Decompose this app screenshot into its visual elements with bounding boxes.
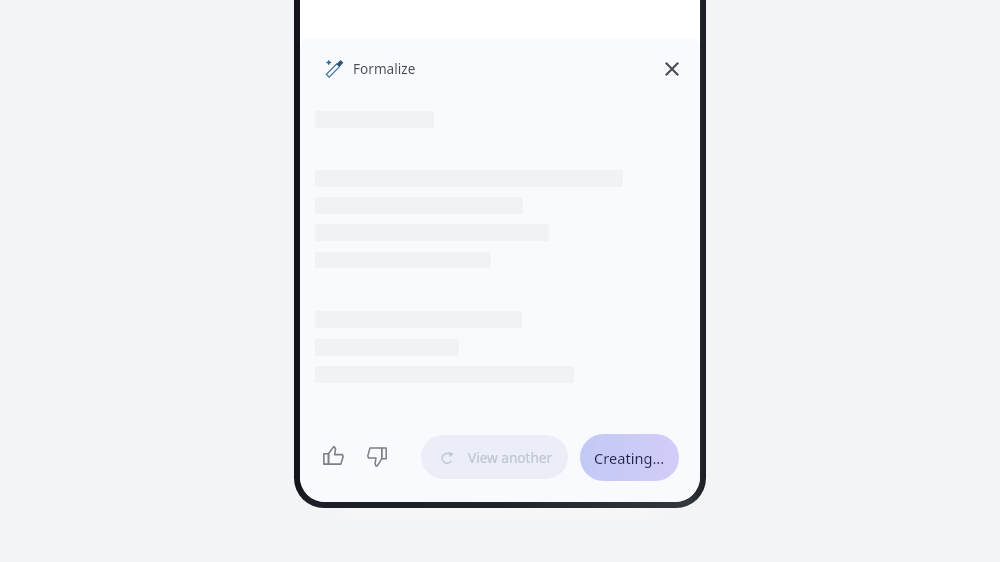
button[interactable]: View another — [421, 435, 568, 479]
button[interactable]: Creating... — [580, 434, 679, 481]
button[interactable]: Thumbs up — [316, 438, 350, 472]
button[interactable]: Thumbs down — [360, 440, 394, 474]
button[interactable]: Formalize — [326, 53, 416, 83]
staticText: Formalize — [353, 59, 416, 78]
staticText: Creating... — [594, 448, 665, 468]
staticText: View another — [468, 448, 553, 467]
button[interactable]: Close — [656, 53, 688, 85]
